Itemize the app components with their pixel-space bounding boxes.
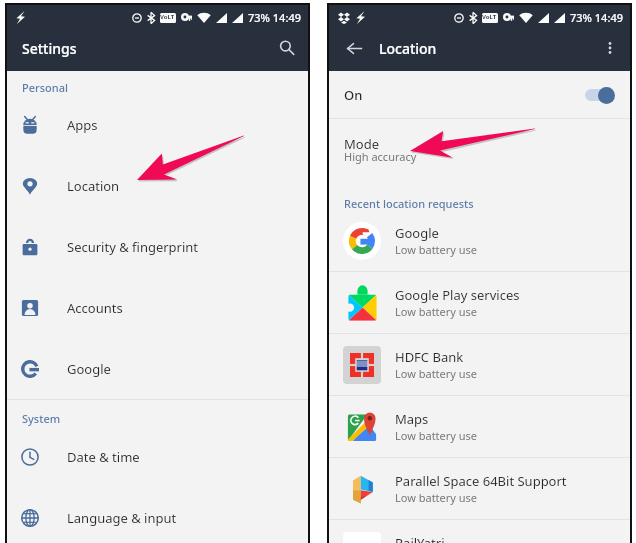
staticText: System <box>22 411 61 426</box>
button[interactable]: Back <box>341 35 367 61</box>
button[interactable]: Apps <box>7 94 308 155</box>
staticText: Recent location requests <box>344 196 474 211</box>
button[interactable]: Google <box>329 210 630 271</box>
button[interactable]: On <box>329 71 630 118</box>
staticText: Settings <box>22 39 77 58</box>
button[interactable]: More options <box>597 35 623 61</box>
button[interactable]: Location <box>7 155 308 216</box>
staticText: High accuracy <box>344 149 417 164</box>
button[interactable]: Parallel Space 64Bit Support <box>329 458 630 519</box>
button[interactable]: Google <box>7 338 308 399</box>
staticText: Location <box>379 39 437 58</box>
staticText: Mode <box>344 135 379 153</box>
staticText: Parallel Space 64Bit Support <box>395 472 567 490</box>
staticText: Apps <box>67 116 98 134</box>
staticText: VoLTE <box>482 13 498 23</box>
staticText: VoLTE <box>160 13 176 23</box>
staticText: Location <box>67 177 120 195</box>
staticText: RailYatri <box>395 534 445 543</box>
staticText: Language & input <box>67 509 177 527</box>
staticText: Maps <box>395 410 429 428</box>
button[interactable]: Google Play services <box>329 272 630 333</box>
staticText: 73% 14:49 <box>248 10 301 25</box>
staticText: Date & time <box>67 448 140 466</box>
staticText: Low battery use <box>395 428 478 443</box>
staticText: Personal <box>22 80 68 95</box>
staticText: Low battery use <box>395 304 478 319</box>
button[interactable]: HDFC Bank <box>329 334 630 395</box>
button[interactable]: Search <box>266 27 308 69</box>
button[interactable]: Date & time <box>7 426 308 487</box>
staticText: Security & fingerprint <box>67 238 199 256</box>
staticText: On <box>344 86 363 104</box>
staticText: 73% 14:49 <box>570 10 623 25</box>
staticText: HDFC Bank <box>395 348 464 366</box>
staticText: Low battery use <box>395 242 478 257</box>
button[interactable]: Language & input <box>7 487 308 543</box>
staticText: Accounts <box>67 299 123 317</box>
staticText: Google <box>395 224 439 242</box>
button[interactable]: Maps <box>329 396 630 457</box>
staticText: Google <box>67 360 111 378</box>
button[interactable]: Security & fingerprint <box>7 216 308 277</box>
button[interactable]: RAIL <box>329 520 630 543</box>
staticText: Low battery use <box>395 490 478 505</box>
button[interactable]: Mode <box>329 119 630 184</box>
button[interactable]: Accounts <box>7 277 308 338</box>
staticText: Low battery use <box>395 366 478 381</box>
staticText: Google Play services <box>395 286 520 304</box>
